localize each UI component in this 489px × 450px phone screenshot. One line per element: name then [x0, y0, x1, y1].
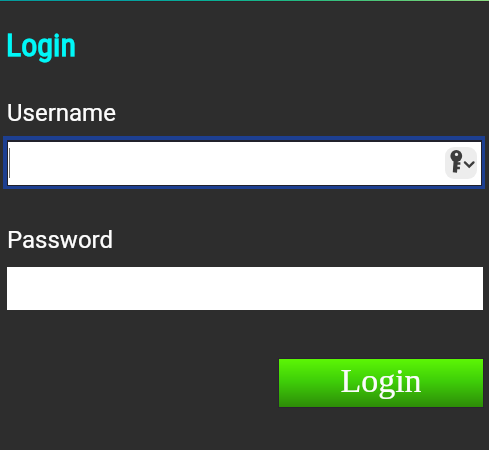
- button[interactable]: Login: [278, 358, 484, 408]
- button[interactable]: Username input field: [3, 136, 485, 189]
- staticText: Username: [7, 99, 116, 127]
- button[interactable]: Show saved passwords: [445, 147, 477, 179]
- staticText: Login: [6, 26, 76, 64]
- staticText: Login: [340, 362, 422, 400]
- staticText: Password: [7, 226, 114, 254]
